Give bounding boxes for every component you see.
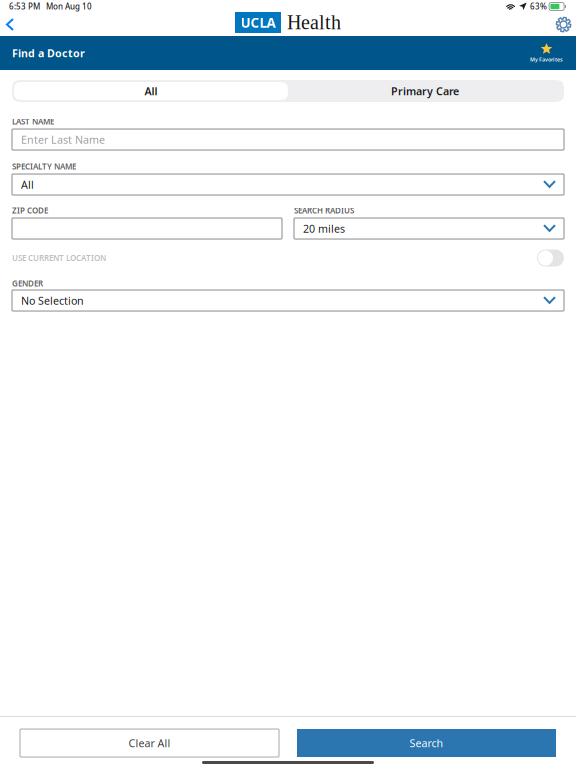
- staticText: USE CURRENT LOCATION: [12, 253, 106, 263]
- staticText: Primary Care: [391, 84, 459, 98]
- button[interactable]: All: [14, 82, 288, 100]
- staticText: No Selection: [21, 293, 84, 308]
- staticText: Mon Aug 10: [40, 1, 92, 12]
- button[interactable]: Enter Last Name: [12, 129, 564, 150]
- button[interactable]: 20 miles: [294, 218, 564, 239]
- button[interactable]: Back: [0, 14, 24, 35]
- button[interactable]: Use current location: [537, 249, 564, 266]
- staticText: 63%: [530, 1, 547, 12]
- staticText: Find a Doctor: [12, 46, 85, 60]
- staticText: ZIP CODE: [12, 205, 48, 216]
- staticText: My Favorites: [530, 56, 563, 63]
- staticText: GENDER: [12, 278, 43, 289]
- button[interactable]: Search: [297, 729, 556, 757]
- button[interactable]: My Favorites: [530, 43, 564, 63]
- staticText: LAST NAME: [12, 116, 54, 127]
- button[interactable]: Clear All: [20, 729, 279, 757]
- staticText: Clear All: [128, 736, 170, 750]
- button[interactable]: Settings: [548, 14, 576, 35]
- staticText: Search: [409, 736, 443, 750]
- staticText: UCLA: [240, 14, 275, 31]
- button[interactable]: [12, 218, 282, 239]
- staticText: All: [144, 84, 157, 98]
- staticText: 6:53 PM: [9, 1, 40, 12]
- staticText: Health: [287, 11, 341, 33]
- staticText: Enter Last Name: [21, 132, 105, 147]
- button[interactable]: Primary Care: [288, 82, 562, 100]
- staticText: All: [21, 177, 34, 192]
- staticText: 20 miles: [303, 221, 345, 236]
- button[interactable]: All: [12, 174, 564, 195]
- staticText: SEARCH RADIUS: [294, 205, 354, 216]
- staticText: SPECIALTY NAME: [12, 161, 76, 172]
- button[interactable]: No Selection: [12, 290, 564, 311]
